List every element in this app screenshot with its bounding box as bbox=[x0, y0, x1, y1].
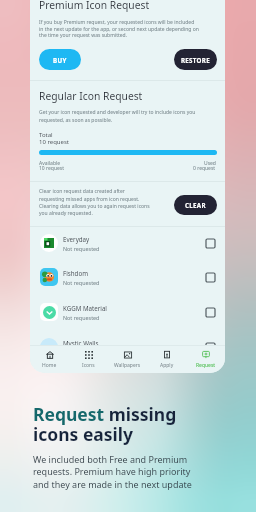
button[interactable]: Icons bbox=[69, 351, 108, 369]
staticText: Total bbox=[39, 131, 53, 139]
staticText: KGGM Material bbox=[63, 304, 107, 312]
staticText: Fishdom bbox=[63, 269, 88, 277]
staticText: Icons bbox=[82, 362, 95, 369]
staticText: Available bbox=[39, 160, 61, 167]
button[interactable]: Fishdom bbox=[30, 260, 225, 294]
staticText: If you buy Premium request, your request… bbox=[39, 19, 199, 38]
staticText: We included both Free and Premium reques… bbox=[33, 453, 192, 491]
staticText: Not requested bbox=[63, 314, 100, 321]
button[interactable]: CLEAR bbox=[174, 195, 217, 215]
staticText: Clear icon request data created after re… bbox=[39, 188, 150, 216]
button[interactable]: Wallpapers bbox=[108, 351, 147, 369]
staticText: 10 request bbox=[39, 138, 69, 146]
staticText: Used bbox=[204, 160, 216, 167]
staticText: Request missing icons easily bbox=[33, 402, 177, 446]
button[interactable]: Select Mystic Walls bbox=[206, 343, 215, 352]
staticText: 10 request bbox=[39, 165, 64, 172]
staticText: Get your icon requested and developer wi… bbox=[39, 109, 196, 123]
staticText: 0 request bbox=[193, 165, 216, 172]
staticText: Not requested bbox=[63, 349, 100, 356]
staticText: Home bbox=[42, 362, 57, 369]
staticText: CLEAR bbox=[185, 201, 206, 209]
button[interactable]: Mystic Walls bbox=[30, 330, 225, 364]
button[interactable]: KGGM Material bbox=[30, 295, 225, 329]
staticText: Premium Icon Request bbox=[39, 0, 150, 12]
staticText: Everyday bbox=[63, 235, 90, 243]
button[interactable]: Everyday bbox=[30, 226, 225, 260]
button[interactable]: Select Fishdom bbox=[206, 273, 215, 282]
staticText: Not requested bbox=[63, 279, 100, 286]
button[interactable]: Select Everyday bbox=[206, 239, 215, 248]
staticText: RESTORE bbox=[181, 56, 210, 64]
button[interactable]: BUY bbox=[39, 49, 81, 70]
button[interactable]: RESTORE bbox=[174, 49, 217, 70]
button[interactable]: Select KGGM Material bbox=[206, 308, 215, 317]
staticText: Mystic Walls bbox=[63, 339, 99, 347]
staticText: Regular Icon Request bbox=[39, 89, 143, 103]
staticText: Apply bbox=[160, 362, 174, 369]
staticText: BUY bbox=[53, 56, 67, 64]
staticText: Not requested bbox=[63, 245, 100, 252]
button[interactable]: Apply bbox=[147, 351, 186, 369]
button[interactable]: Home bbox=[30, 351, 69, 369]
button[interactable]: Request bbox=[186, 351, 225, 369]
staticText: Request bbox=[196, 362, 216, 369]
staticText: Wallpapers bbox=[114, 362, 141, 369]
